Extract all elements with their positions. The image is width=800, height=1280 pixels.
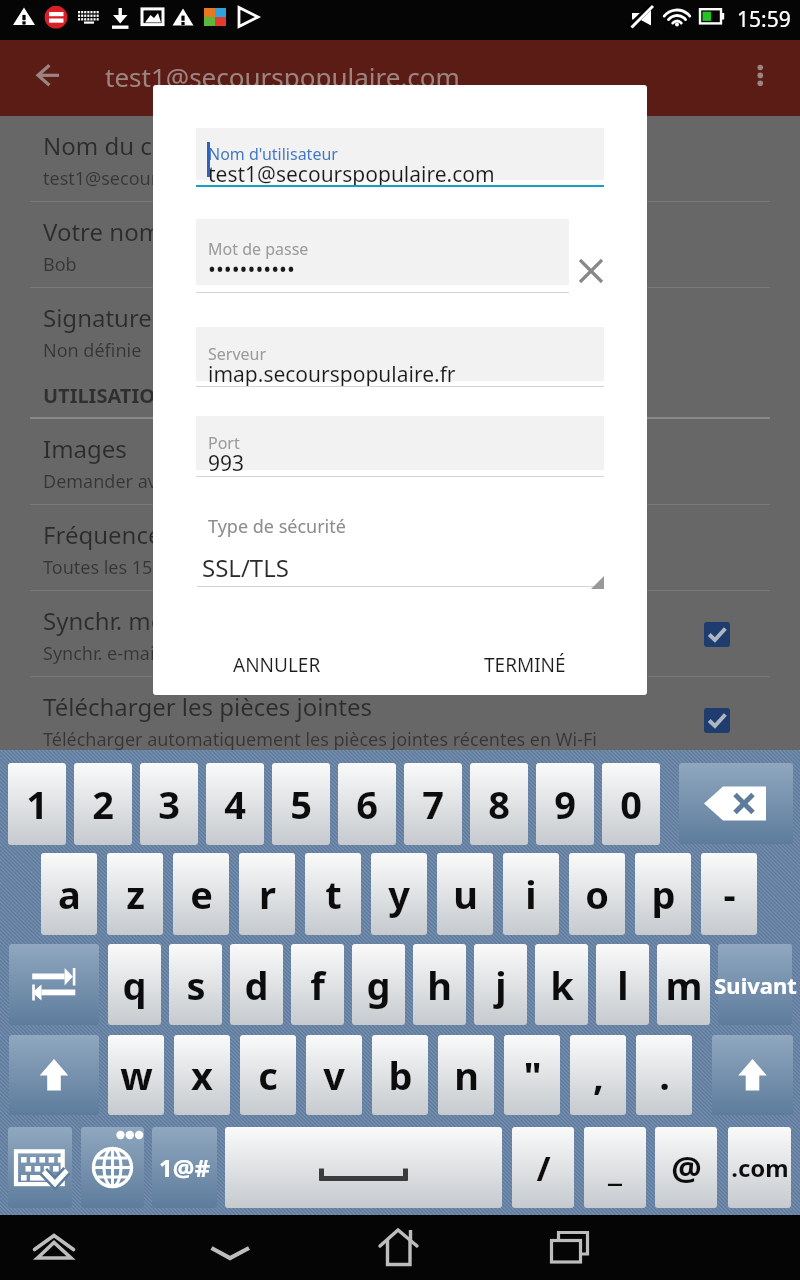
button[interactable]: shift (9, 1035, 99, 1115)
button[interactable]: 8 (470, 763, 528, 845)
button[interactable] (718, 944, 792, 1025)
staticText: Votre nom (43, 215, 162, 248)
button[interactable]: t (305, 853, 361, 935)
button[interactable]: n (438, 1035, 494, 1115)
button[interactable]: globe (81, 1127, 144, 1208)
staticText: j (495, 959, 507, 1011)
staticText: TERMINÉ (484, 652, 566, 678)
button[interactable]: 2 (74, 763, 132, 845)
button[interactable]: m (657, 944, 710, 1025)
button[interactable]: 6 (338, 763, 396, 845)
button[interactable]: Hide keyboard (200, 1225, 260, 1279)
staticText: 15:59 (737, 5, 791, 34)
button[interactable]: z (107, 853, 163, 935)
button[interactable]: j (474, 944, 527, 1025)
button[interactable]: Serveur (196, 327, 604, 381)
staticText: 9 (554, 778, 576, 830)
button[interactable]: 5 (272, 763, 330, 845)
button[interactable]: d (230, 944, 283, 1025)
staticText: i (525, 868, 537, 920)
staticText: Signature (43, 301, 152, 334)
button[interactable]: x (174, 1035, 230, 1115)
staticText: 7 (422, 778, 444, 830)
button[interactable]: Synchr. messagerie (0, 591, 800, 676)
button[interactable]: Back (24, 1225, 84, 1279)
staticText: q (122, 959, 147, 1011)
button[interactable]: Nom du compte (0, 116, 800, 201)
button[interactable]: Recent apps (539, 1225, 599, 1279)
button[interactable]: - (701, 853, 757, 935)
button[interactable]: a (41, 853, 97, 935)
button[interactable]: r (239, 853, 295, 935)
button[interactable]: 9 (536, 763, 594, 845)
staticText: Serveur (208, 343, 267, 365)
button[interactable]: h (413, 944, 466, 1025)
button[interactable]: 7 (404, 763, 462, 845)
button[interactable]: y (371, 853, 427, 935)
button[interactable]: e (173, 853, 229, 935)
button[interactable]: Back (14, 43, 84, 113)
button[interactable]: shift (712, 1035, 793, 1115)
button[interactable]: w (108, 1035, 164, 1115)
button[interactable]: _ (584, 1127, 646, 1208)
button[interactable]: Clear password (565, 245, 617, 297)
staticText: Toutes les 15 minutes (43, 555, 227, 580)
button[interactable]: u (437, 853, 493, 935)
staticText: Nom du compte (43, 129, 226, 162)
button[interactable]: TERMINÉ (463, 636, 586, 694)
staticText: v (323, 1049, 345, 1101)
button[interactable]: Télécharger les pièces jointes (0, 677, 800, 750)
button[interactable]: k (535, 944, 588, 1025)
button[interactable]: More options (730, 43, 790, 113)
button[interactable]: v (306, 1035, 362, 1115)
button[interactable]: i (503, 853, 559, 935)
button[interactable]: . (636, 1035, 692, 1115)
staticText: Synchr. e-mails de ce compte (43, 641, 286, 666)
button[interactable]: ANNULER (211, 636, 342, 694)
staticText: 4 (224, 778, 246, 830)
staticText: e (190, 868, 213, 920)
button[interactable]: Images (0, 419, 800, 504)
button[interactable]: , (570, 1035, 626, 1115)
button[interactable]: s (169, 944, 222, 1025)
button[interactable]: 4 (206, 763, 264, 845)
staticText: Port (208, 432, 240, 454)
button[interactable]: Mot de passe (196, 219, 569, 285)
button[interactable]: c (240, 1035, 296, 1115)
button[interactable]: g (352, 944, 405, 1025)
button[interactable]: b (372, 1035, 428, 1115)
button[interactable]: Votre nom (0, 202, 800, 287)
button[interactable]: .com (728, 1127, 791, 1208)
button[interactable]: 3 (140, 763, 198, 845)
button[interactable]: / (512, 1127, 574, 1208)
button[interactable]: Home (368, 1225, 428, 1279)
button[interactable]: Fréquence de consultation (0, 505, 800, 590)
button[interactable]: Nom d'utilisateur (196, 128, 604, 180)
staticText: f (310, 959, 325, 1011)
button[interactable]: l (596, 944, 649, 1025)
button[interactable]: tab (9, 944, 99, 1025)
button[interactable]: @ (655, 1127, 717, 1208)
staticText: p (651, 868, 676, 920)
button[interactable]: " (504, 1035, 560, 1115)
staticText: 6 (356, 778, 378, 830)
button[interactable]: hidekb (8, 1127, 72, 1208)
button[interactable]: 0 (602, 763, 660, 845)
staticText: Fréquence de consultation (43, 518, 342, 551)
staticText: c (258, 1049, 278, 1101)
button[interactable]: Port (196, 416, 604, 470)
staticText: Télécharger les pièces jointes (43, 690, 373, 723)
button[interactable]: backspace (679, 763, 793, 844)
button[interactable]: space (225, 1127, 502, 1208)
staticText: w (120, 1049, 153, 1101)
button[interactable]: 1 (8, 763, 66, 845)
button[interactable]: 1@# (152, 1127, 217, 1208)
staticText: l (617, 959, 629, 1011)
staticText: 5 (290, 778, 312, 830)
button[interactable]: o (569, 853, 625, 935)
button[interactable]: q (108, 944, 161, 1025)
button[interactable]: Signature (0, 288, 800, 373)
button[interactable]: p (635, 853, 691, 935)
staticText: 2 (92, 778, 114, 830)
button[interactable]: f (291, 944, 344, 1025)
